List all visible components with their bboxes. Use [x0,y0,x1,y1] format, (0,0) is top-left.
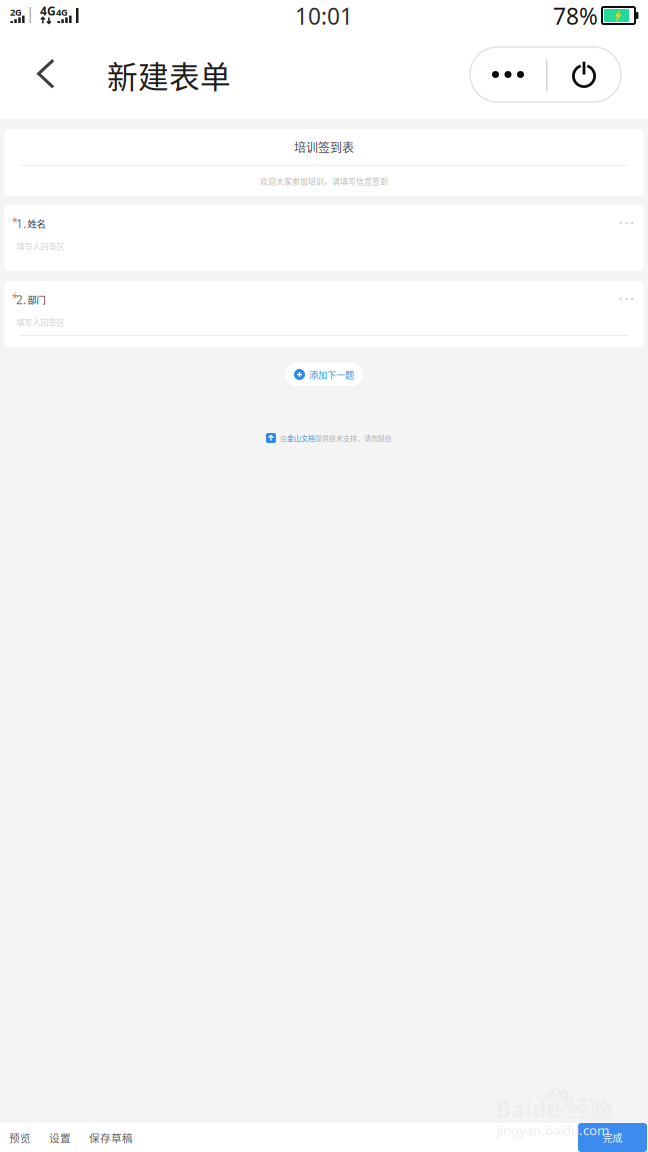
button[interactable]: Close form [547,47,621,102]
staticText: 提供技术支持，请勿轻信 [315,433,392,443]
button[interactable]: 预览 [0,1123,40,1152]
button[interactable]: 保存草稿 [80,1123,142,1152]
staticText: 78% [553,1,598,31]
staticText: 姓名 [27,217,45,230]
staticText: 保存草稿 [89,1130,133,1145]
button[interactable]: * [4,281,643,347]
staticText: 完成 [602,1130,622,1145]
staticText: * [12,290,18,304]
staticText: 2G [10,6,22,18]
staticText: 由 [280,433,287,443]
staticText: 1. [16,215,26,231]
staticText: 部门 [27,293,45,306]
staticText: 4G [40,3,56,19]
staticText: 填写人回答区 [16,316,64,328]
staticText: 培训签到表 [294,138,354,156]
staticText: 金山文档 [287,433,315,443]
staticText: jingyan.baidu.com [497,1121,609,1139]
staticText: Baidu 经验 [496,1094,613,1124]
button[interactable]: 添加下一题 [285,363,363,386]
button[interactable]: 设置 [40,1123,80,1152]
staticText: 设置 [49,1130,71,1145]
button[interactable]: 完成 [578,1123,647,1152]
staticText: 新建表单 [107,53,231,97]
staticText: 添加下一题 [309,368,354,381]
staticText: 10:01 [295,1,353,31]
staticText: 4G [56,6,68,18]
button[interactable]: Back [19,46,73,102]
staticText: 预览 [9,1130,31,1145]
staticText: 填写人回答区 [16,240,64,252]
button[interactable]: * [4,205,643,271]
button[interactable]: More options [470,47,546,102]
staticText: * [12,214,18,228]
staticText: 欢迎大家参加培训，请填写信息签到 [260,175,388,187]
staticText: 2. [16,291,26,307]
